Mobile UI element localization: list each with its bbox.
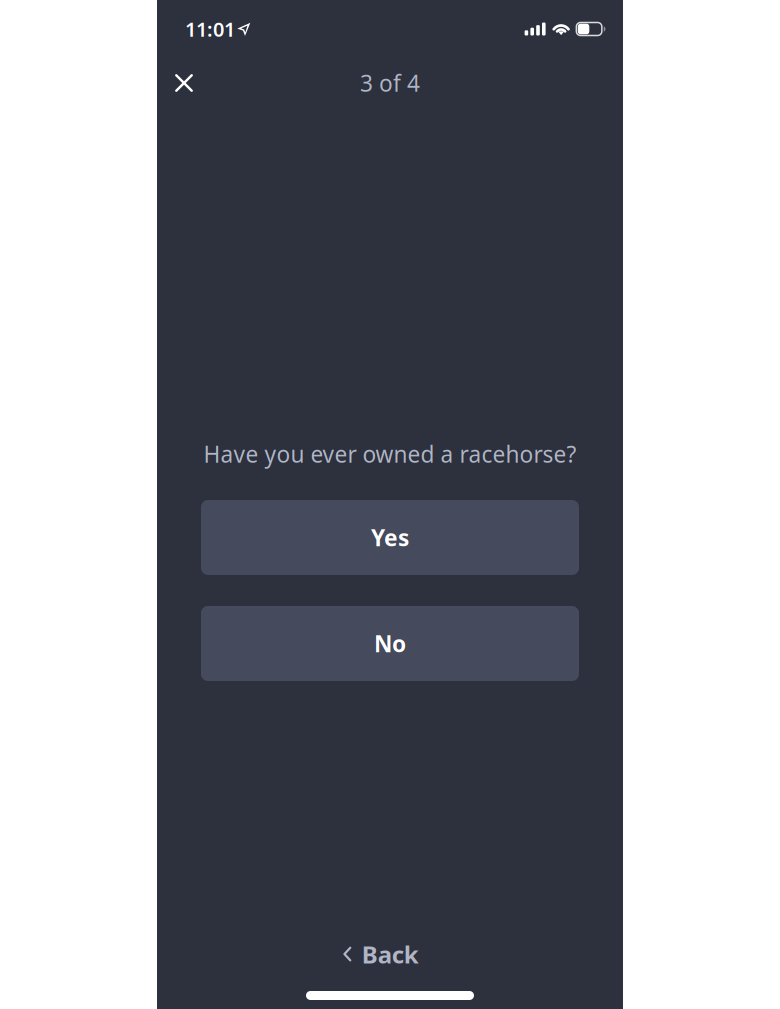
button[interactable]: Back: [323, 928, 439, 982]
staticText: 11:01: [185, 16, 235, 42]
button[interactable]: Close: [165, 63, 203, 103]
staticText: Back: [362, 938, 419, 970]
staticText: Yes: [371, 522, 409, 552]
staticText: 3 of 4: [360, 68, 420, 98]
staticText: Have you ever owned a racehorse?: [203, 439, 576, 469]
button[interactable]: No: [201, 606, 579, 681]
button[interactable]: Yes: [201, 500, 579, 575]
staticText: No: [374, 628, 406, 658]
